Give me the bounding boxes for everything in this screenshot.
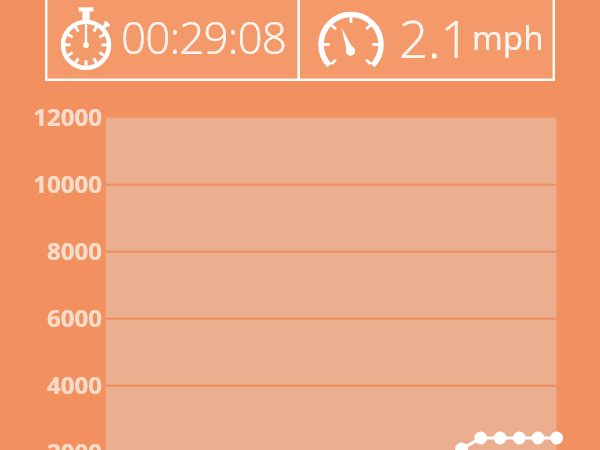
- button[interactable]: [300, 0, 553, 81]
- staticText: 00:29:08: [121, 7, 287, 67]
- button[interactable]: [45, 0, 297, 81]
- staticText: mph: [472, 15, 544, 60]
- staticText: 8000: [47, 234, 102, 264]
- staticText: 2.1: [399, 3, 470, 72]
- other: Speed: [318, 8, 384, 74]
- staticText: 6000: [47, 301, 102, 331]
- staticText: 10000: [33, 167, 102, 197]
- staticText: 2000: [47, 435, 102, 450]
- staticText: 4000: [47, 368, 102, 398]
- staticText: 12000: [33, 100, 102, 130]
- other: Elapsed time: [60, 0, 112, 74]
